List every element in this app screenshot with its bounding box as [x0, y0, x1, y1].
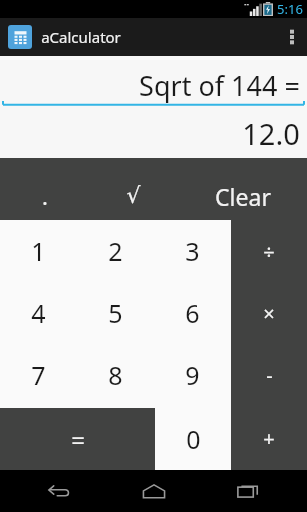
button[interactable]: 2 — [77, 220, 154, 282]
staticText: 7 — [31, 358, 46, 392]
staticText: 8 — [108, 358, 123, 392]
staticText: Sqrt of 144 = — [139, 67, 300, 104]
button[interactable]: More options — [277, 18, 307, 56]
staticText: 5:16 — [277, 0, 303, 18]
button[interactable]: ÷ — [231, 220, 307, 282]
button[interactable]: × — [231, 282, 307, 344]
staticText: ÷ — [263, 238, 275, 265]
button[interactable]: Recent apps — [213, 470, 283, 512]
staticText: + — [263, 425, 275, 452]
button[interactable]: - — [231, 344, 307, 407]
staticText: 3 — [185, 234, 200, 268]
button[interactable]: Home — [119, 470, 189, 512]
staticText: 0 — [186, 422, 201, 456]
staticText: 6 — [185, 296, 200, 330]
button[interactable]: 9 — [154, 344, 231, 406]
button[interactable]: 5 — [77, 282, 154, 344]
staticText: 12.0 — [242, 114, 300, 153]
button[interactable]: 7 — [0, 344, 77, 406]
button[interactable]: 6 — [154, 282, 231, 344]
staticText: 4 — [31, 296, 46, 330]
button[interactable]: 0 — [155, 408, 231, 470]
button[interactable]: = — [0, 408, 155, 470]
button[interactable]: + — [231, 407, 307, 470]
staticText: . — [42, 181, 48, 211]
button[interactable]: 3 — [154, 220, 231, 282]
staticText: √ — [126, 183, 141, 209]
staticText: 9 — [185, 358, 200, 392]
button[interactable]: Sqrt of 144 = — [0, 56, 307, 108]
staticText: - — [266, 362, 273, 389]
button[interactable]: . — [0, 158, 89, 220]
staticText: × — [263, 300, 275, 327]
button[interactable]: 4 — [0, 282, 77, 344]
button[interactable]: Clear — [178, 158, 307, 220]
button[interactable]: √ — [89, 158, 178, 220]
staticText: 1 — [31, 234, 46, 268]
button[interactable]: 8 — [77, 344, 154, 406]
staticText: Clear — [215, 181, 271, 212]
staticText: 2 — [108, 234, 123, 268]
staticText: = — [71, 423, 85, 456]
staticText: aCalculator — [41, 27, 121, 47]
button[interactable]: Back — [24, 470, 94, 512]
button[interactable]: 1 — [0, 220, 77, 282]
staticText: 5 — [108, 296, 123, 330]
